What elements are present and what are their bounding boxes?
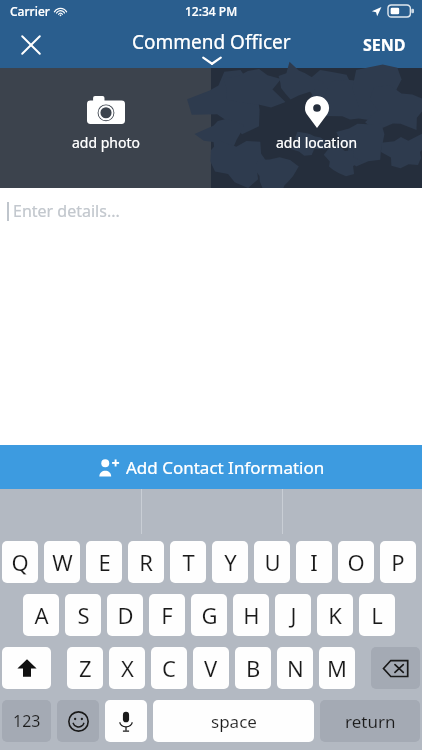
- button[interactable]: add photo: [0, 68, 211, 188]
- button[interactable]: Q: [2, 541, 38, 583]
- button[interactable]: Enter details...: [0, 188, 422, 234]
- button[interactable]: M: [319, 647, 355, 689]
- staticText: 12:34 PM: [185, 3, 238, 19]
- staticText: W: [52, 547, 73, 577]
- button[interactable]: G: [191, 594, 227, 636]
- staticText: add location: [276, 133, 358, 152]
- button[interactable]: I: [296, 541, 332, 583]
- staticText: K: [328, 600, 342, 630]
- staticText: H: [243, 600, 260, 630]
- staticText: D: [117, 600, 134, 630]
- button[interactable]: 123: [2, 700, 51, 742]
- button[interactable]: E: [86, 541, 122, 583]
- button[interactable]: Shift: [2, 647, 51, 689]
- staticText: M: [327, 653, 347, 683]
- button[interactable]: Add Contact Information: [0, 445, 422, 489]
- button[interactable]: A: [23, 594, 59, 636]
- staticText: SEND: [363, 34, 406, 56]
- staticText: B: [246, 653, 261, 683]
- staticText: P: [391, 547, 405, 577]
- button[interactable]: V: [193, 647, 229, 689]
- staticText: 123: [13, 710, 41, 732]
- button[interactable]: C: [151, 647, 187, 689]
- staticText: R: [139, 547, 153, 577]
- button[interactable]: Z: [67, 647, 103, 689]
- button[interactable]: Dictation: [105, 700, 147, 742]
- staticText: O: [347, 547, 365, 577]
- button[interactable]: H: [233, 594, 269, 636]
- staticText: T: [182, 547, 195, 577]
- button[interactable]: F: [149, 594, 185, 636]
- button[interactable]: Backspace: [371, 647, 420, 689]
- staticText: C: [162, 653, 176, 683]
- staticText: add photo: [72, 133, 140, 152]
- staticText: F: [161, 600, 173, 630]
- staticText: Add Contact Information: [126, 456, 325, 479]
- button[interactable]: N: [277, 647, 313, 689]
- staticText: E: [98, 547, 111, 577]
- staticText: G: [201, 600, 218, 630]
- button[interactable]: space: [153, 700, 314, 742]
- staticText: S: [77, 600, 90, 630]
- button[interactable]: T: [170, 541, 206, 583]
- staticText: Commend Officer: [132, 29, 291, 55]
- staticText: J: [290, 600, 297, 630]
- staticText: A: [34, 600, 49, 630]
- button[interactable]: add location: [211, 68, 422, 188]
- staticText: Enter details...: [13, 200, 120, 222]
- button[interactable]: S: [65, 594, 101, 636]
- staticText: V: [204, 653, 218, 683]
- staticText: Carrier: [10, 3, 50, 19]
- button[interactable]: W: [44, 541, 80, 583]
- staticText: Y: [224, 547, 237, 577]
- button[interactable]: Close: [8, 22, 54, 68]
- staticText: return: [345, 710, 396, 733]
- button[interactable]: R: [128, 541, 164, 583]
- button[interactable]: X: [109, 647, 145, 689]
- staticText: N: [287, 653, 304, 683]
- staticText: L: [371, 600, 383, 630]
- button[interactable]: U: [254, 541, 290, 583]
- button[interactable]: K: [317, 594, 353, 636]
- staticText: space: [211, 710, 257, 733]
- button[interactable]: Y: [212, 541, 248, 583]
- staticText: U: [264, 547, 281, 577]
- button[interactable]: J: [275, 594, 311, 636]
- button[interactable]: Emoji: [57, 700, 99, 742]
- staticText: Z: [79, 653, 92, 683]
- button[interactable]: P: [380, 541, 416, 583]
- staticText: I: [310, 547, 318, 577]
- staticText: Q: [11, 547, 29, 577]
- staticText: X: [121, 653, 134, 683]
- button[interactable]: return: [320, 700, 420, 742]
- button[interactable]: L: [359, 594, 395, 636]
- button[interactable]: D: [107, 594, 143, 636]
- button[interactable]: O: [338, 541, 374, 583]
- button[interactable]: B: [235, 647, 271, 689]
- button[interactable]: SEND: [353, 22, 416, 68]
